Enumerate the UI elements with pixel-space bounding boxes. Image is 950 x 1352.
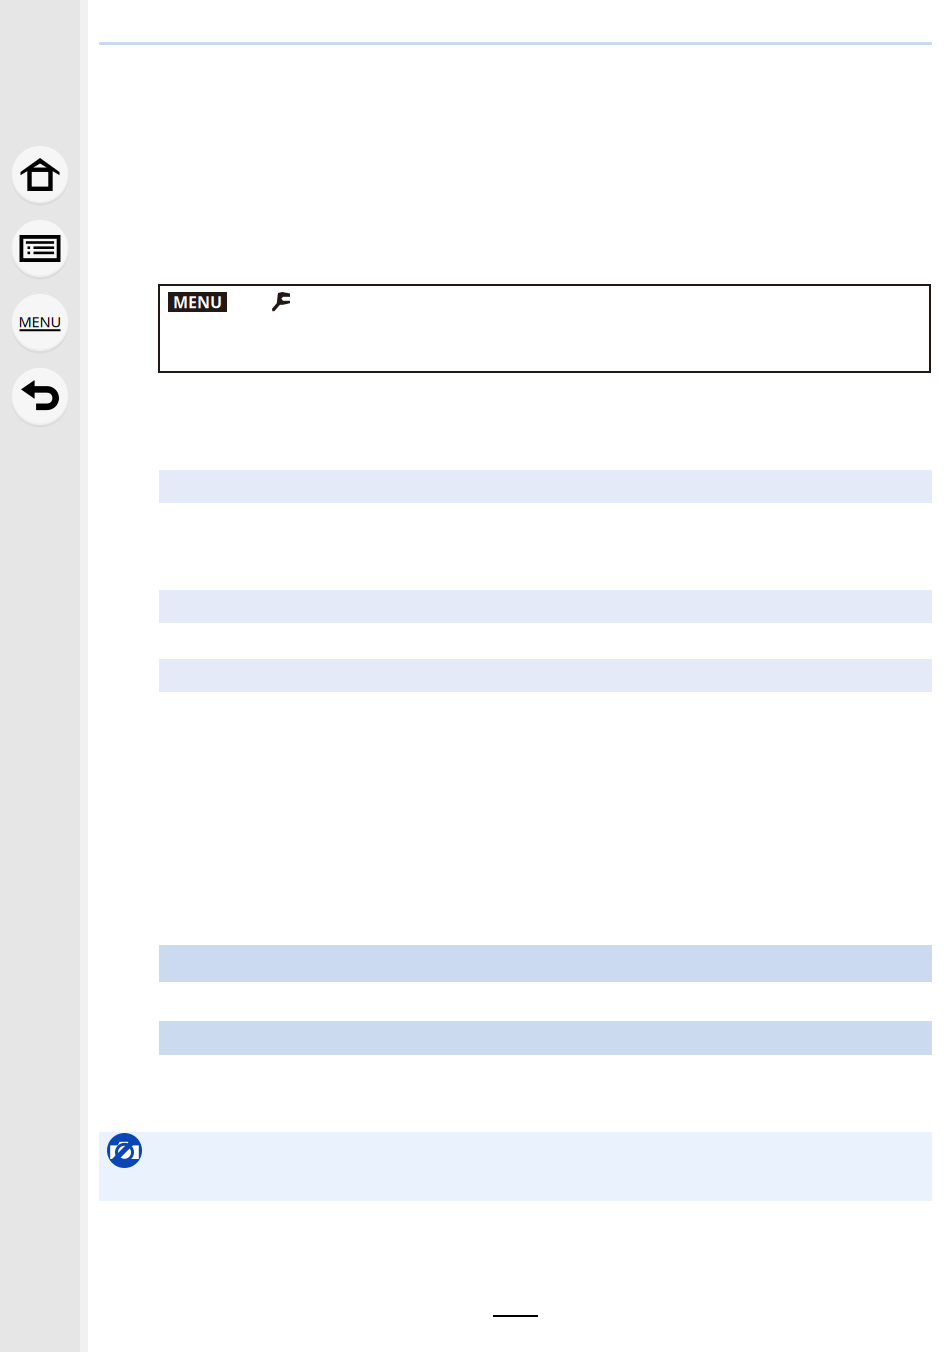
button[interactable]: Contents [2,217,78,280]
button[interactable]: Back [2,365,78,428]
button[interactable]: MENU, Setup [159,285,930,372]
button[interactable]: Home [2,143,78,206]
staticText: MENU [173,291,222,313]
staticText: MENU [18,312,61,331]
button[interactable]: Menu [2,291,78,354]
